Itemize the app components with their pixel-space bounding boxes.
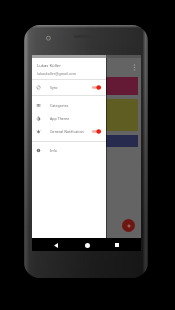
button[interactable]: General Notification [32,125,106,138]
button[interactable]: App Theme [32,112,106,125]
button[interactable]: Recent apps [111,239,123,251]
staticText: App Theme [50,116,70,121]
staticText: lukaskoller@gmail.com [37,71,77,76]
button[interactable]: Info [32,144,106,157]
button[interactable] [32,135,138,147]
button[interactable]: Categories [32,99,106,112]
button[interactable]: Sync [32,80,106,95]
button[interactable]: Home [81,239,93,251]
button[interactable]: Back [50,239,62,251]
button[interactable]: Add [122,219,135,232]
button[interactable] [32,99,138,131]
staticText: Info [50,148,57,153]
button[interactable]: More options [130,61,138,74]
button[interactable] [32,77,138,95]
staticText: Categories [50,103,69,108]
staticText: Sync [50,85,58,90]
staticText: Lukas Küller [37,63,61,69]
staticText: General Notification [50,129,84,134]
